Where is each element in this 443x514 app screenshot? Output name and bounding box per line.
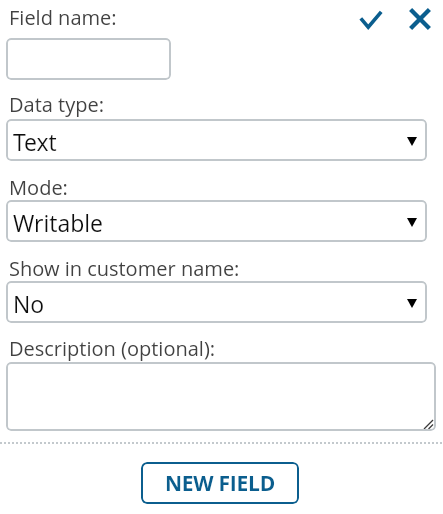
staticText: Mode: (9, 174, 68, 201)
button[interactable]: Save field (354, 5, 388, 34)
staticText: Data type: (9, 91, 105, 118)
button[interactable]: Show in customer name (6, 281, 427, 323)
staticText: Text (13, 126, 57, 157)
button[interactable]: NEW FIELD (141, 462, 299, 504)
staticText: Show in customer name: (9, 255, 240, 282)
staticText: No (13, 288, 45, 319)
staticText: Writable (13, 207, 104, 238)
staticText: NEW FIELD (165, 469, 275, 498)
button[interactable]: Cancel (403, 2, 437, 36)
button[interactable]: Description (6, 362, 436, 431)
staticText: Description (optional): (9, 335, 216, 362)
button[interactable]: Data type (6, 119, 427, 161)
button[interactable]: Mode (6, 200, 427, 242)
button[interactable]: Field name (6, 38, 171, 80)
staticText: Field name: (9, 4, 117, 31)
